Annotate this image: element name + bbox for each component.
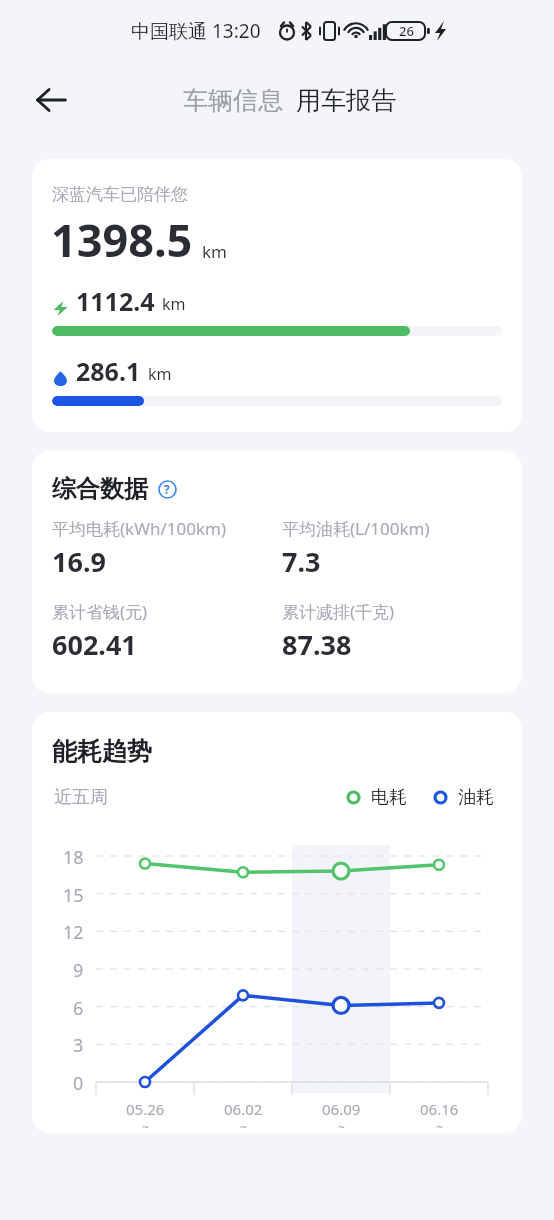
staticText: ~ — [142, 1119, 149, 1133]
button[interactable]: 深蓝汽车已陪伴您 — [32, 159, 522, 432]
staticText: ? — [164, 481, 170, 497]
staticText: 1398.5 — [51, 209, 193, 270]
staticText: 3 — [73, 1033, 84, 1055]
staticText: 9 — [73, 958, 84, 980]
staticText: 中国联通 13:20 — [131, 18, 261, 44]
staticText: 16.9 — [52, 543, 106, 580]
staticText: 12 — [63, 920, 84, 942]
button[interactable]: 06.02 — [194, 1099, 292, 1133]
staticText: 05.26 — [126, 1099, 165, 1119]
staticText: 602.41 — [52, 626, 137, 663]
staticText: ~ — [240, 1119, 247, 1133]
staticText: 累计省钱(元) — [52, 600, 148, 623]
staticText: 综合数据 — [52, 474, 148, 504]
staticText: 06.09 — [322, 1099, 361, 1119]
button[interactable]: 油耗 — [433, 786, 494, 809]
staticText: 87.38 — [282, 626, 352, 663]
staticText: 累计减排(千克) — [282, 600, 395, 623]
staticText: ~ — [436, 1119, 443, 1133]
staticText: 1112.4 — [76, 284, 155, 318]
staticText: 06.02 — [224, 1099, 263, 1119]
staticText: 18 — [63, 845, 84, 867]
staticText: 15 — [63, 883, 84, 905]
staticText: 平均电耗(kWh/100km) — [52, 517, 227, 540]
button[interactable]: 能耗趋势 — [32, 712, 522, 1133]
staticText: ~ — [338, 1119, 345, 1133]
button[interactable]: 05.26 — [96, 1099, 194, 1133]
button[interactable]: 说明 — [156, 478, 178, 500]
staticText: 7.3 — [282, 543, 321, 580]
button[interactable]: 综合数据 — [32, 451, 522, 693]
staticText: 电耗 — [371, 786, 407, 809]
staticText: km — [162, 293, 186, 315]
staticText: 能耗趋势 — [52, 736, 152, 767]
button[interactable]: 用车报告 — [296, 85, 396, 116]
staticText: km — [202, 240, 227, 263]
staticText: 深蓝汽车已陪伴您 — [52, 184, 188, 205]
staticText: 26 — [399, 22, 414, 40]
button[interactable]: 电耗 — [346, 786, 407, 809]
staticText: 286.1 — [76, 354, 141, 388]
staticText: 6 — [73, 996, 84, 1018]
button[interactable]: 返回 — [22, 71, 80, 129]
button[interactable]: 车辆信息 — [183, 85, 283, 116]
staticText: 0 — [73, 1071, 84, 1093]
staticText: 06.16 — [420, 1099, 459, 1119]
staticText: km — [148, 363, 172, 385]
button[interactable]: 06.09 — [292, 1099, 390, 1133]
staticText: 近五周 — [54, 786, 108, 809]
staticText: 油耗 — [458, 786, 494, 809]
button[interactable]: 06.16 — [390, 1099, 488, 1133]
staticText: 平均油耗(L/100km) — [282, 517, 430, 540]
